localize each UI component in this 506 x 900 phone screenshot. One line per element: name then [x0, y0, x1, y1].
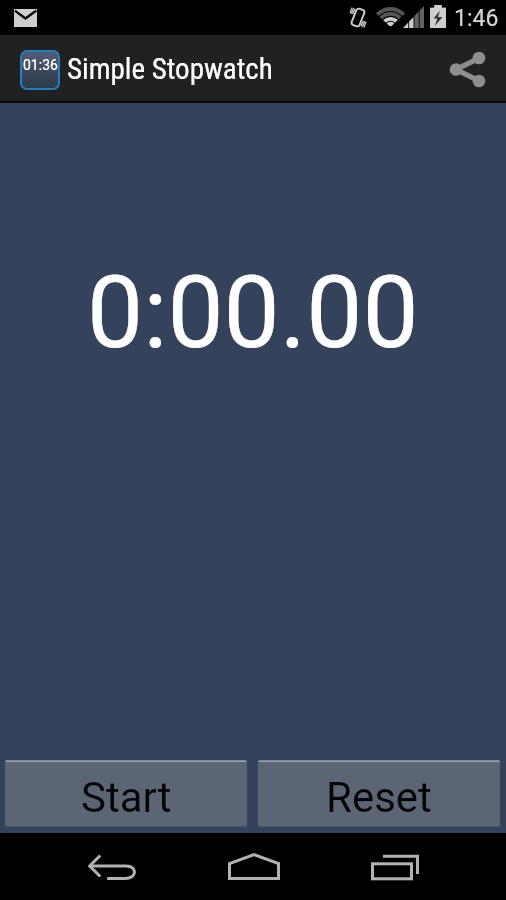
- staticText: Reset: [326, 773, 432, 822]
- button[interactable]: Start: [5, 760, 247, 827]
- button[interactable]: Recents: [324, 833, 465, 900]
- staticText: 0:00.00: [87, 254, 419, 371]
- staticText: Simple Stopwatch: [67, 52, 273, 86]
- staticText: 1:46: [454, 5, 499, 32]
- staticText: Start: [81, 773, 172, 822]
- button[interactable]: Back: [41, 833, 183, 900]
- button[interactable]: Home: [183, 833, 324, 900]
- staticText: 01:36: [23, 57, 58, 73]
- button[interactable]: 01:36: [22, 52, 58, 88]
- button[interactable]: Share: [440, 35, 506, 103]
- button[interactable]: Reset: [258, 760, 500, 827]
